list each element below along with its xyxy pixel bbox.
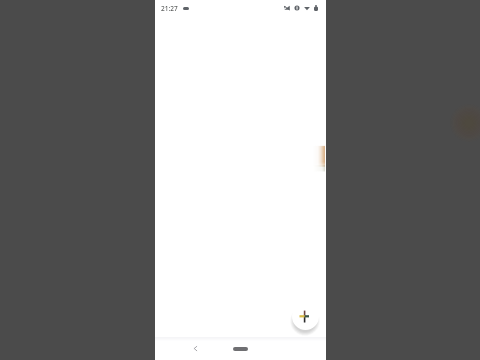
button[interactable]: Create new xyxy=(292,303,319,330)
button[interactable]: Back xyxy=(192,345,199,352)
button[interactable]: Home xyxy=(233,347,248,351)
staticText: 21:27 xyxy=(161,4,178,13)
